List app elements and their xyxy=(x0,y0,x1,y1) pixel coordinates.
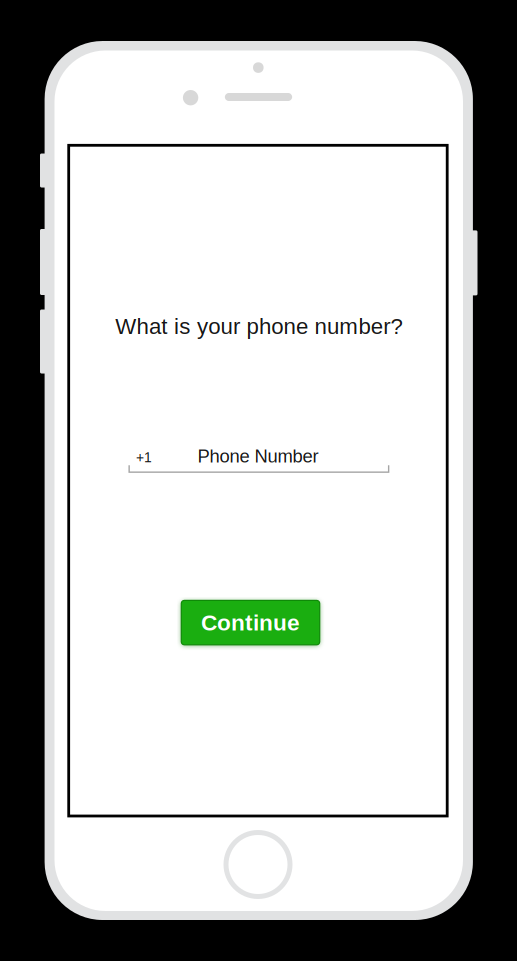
staticText: What is your phone number? xyxy=(115,314,403,339)
staticText: +1 xyxy=(136,450,152,465)
staticText: Phone Number xyxy=(197,446,318,466)
staticText: Continue xyxy=(201,610,300,635)
button[interactable]: Continue xyxy=(181,600,320,645)
button[interactable]: Phone Number xyxy=(128,443,390,474)
